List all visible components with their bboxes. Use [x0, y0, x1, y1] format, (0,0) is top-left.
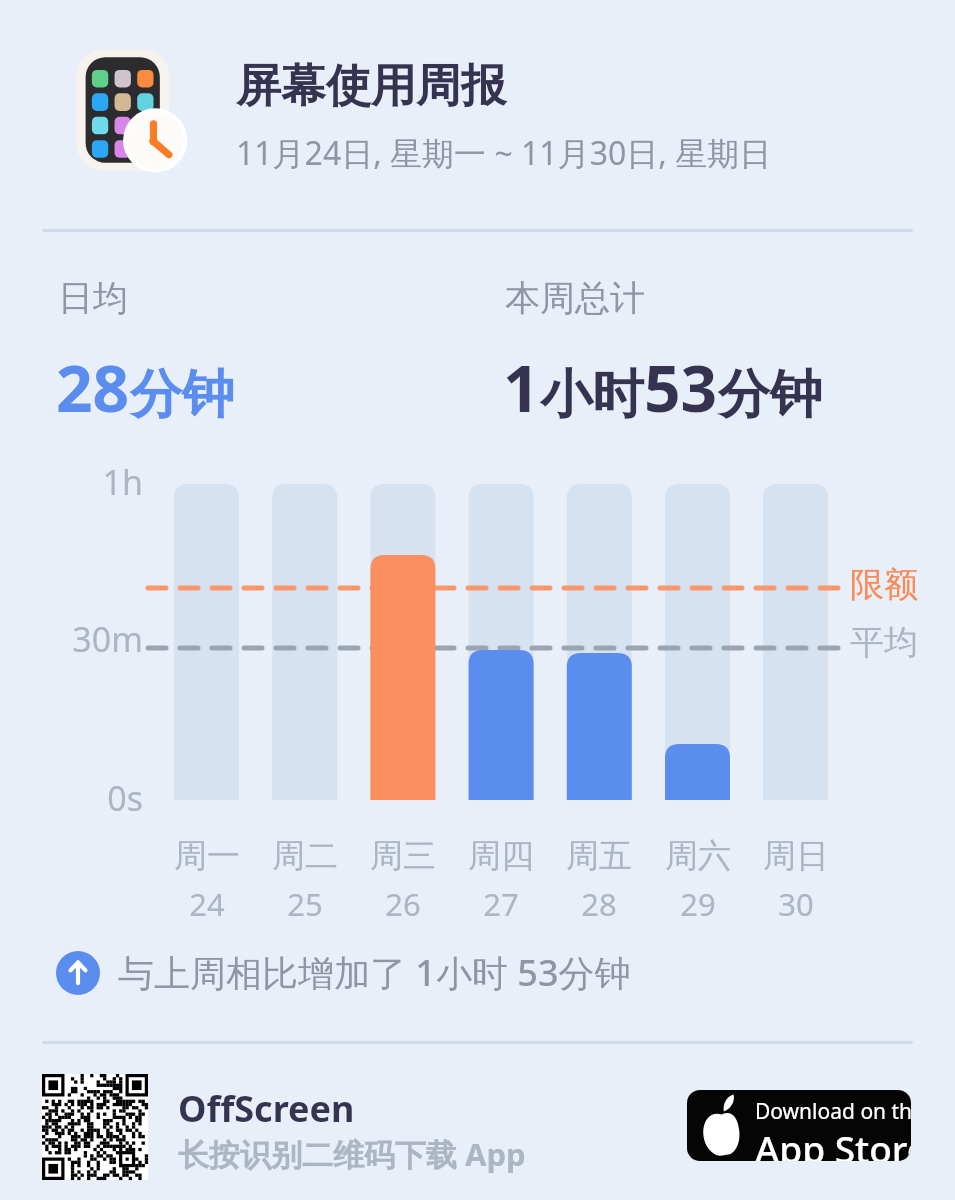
staticText: App Store	[755, 1123, 911, 1161]
button[interactable]: Increase	[56, 948, 639, 997]
staticText: 24	[189, 883, 225, 925]
staticText: 28	[56, 344, 130, 431]
staticText: 28	[581, 883, 617, 925]
staticText: 30	[778, 883, 814, 925]
staticText: 1	[503, 344, 540, 431]
staticText: 1h	[102, 459, 143, 505]
staticText: 日均	[58, 276, 128, 320]
staticText: 分钟	[130, 362, 234, 428]
staticText: 与上周相比增加了 1小时 53分钟	[118, 948, 631, 997]
staticText: 长按识别二维码下载 App	[178, 1133, 526, 1175]
staticText: Download on the	[755, 1097, 911, 1126]
staticText: 29	[680, 883, 716, 925]
staticText: 周六	[665, 835, 731, 877]
staticText: 11月24日, 星期一 ~ 11月30日, 星期日	[236, 131, 772, 175]
button[interactable]: Download on the App Store	[687, 1090, 911, 1161]
staticText: 屏幕使用周报	[236, 58, 506, 115]
staticText: 分钟	[718, 362, 822, 428]
staticText: 平均	[850, 621, 918, 664]
button[interactable]: QR code to download app	[42, 1074, 148, 1180]
staticText: 周日	[763, 835, 829, 877]
staticText: 本周总计	[505, 276, 645, 320]
staticText: 周五	[566, 835, 632, 877]
staticText: 周三	[370, 835, 436, 877]
staticText: OffScreen	[178, 1084, 355, 1133]
staticText: 周四	[468, 835, 534, 877]
other: Increase	[56, 951, 100, 995]
staticText: 小时	[540, 362, 644, 428]
staticText: 53	[644, 344, 718, 431]
staticText: 0s	[107, 775, 143, 821]
staticText: 30m	[72, 616, 143, 662]
staticText: 周二	[272, 835, 338, 877]
staticText: 25	[287, 883, 323, 925]
staticText: 限额	[850, 563, 918, 606]
staticText: 26	[385, 883, 421, 925]
staticText: 周一	[174, 835, 240, 877]
staticText: 27	[483, 883, 519, 925]
